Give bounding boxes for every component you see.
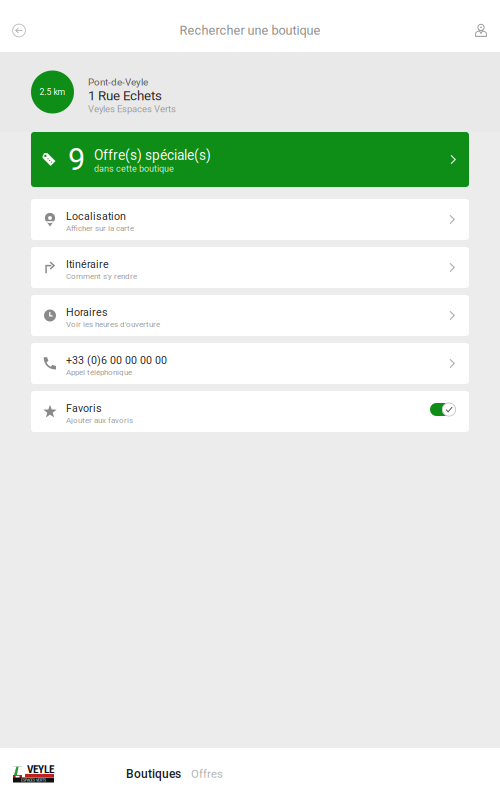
staticText: 9: [68, 141, 85, 177]
button[interactable]: 9: [31, 132, 469, 187]
staticText: ESPACES VERTS: [21, 778, 46, 782]
staticText: Ajouter aux favoris: [66, 416, 133, 425]
staticText: Comment s'y rendre: [66, 272, 137, 281]
staticText: Rechercher une boutique: [179, 23, 320, 38]
staticText: Afficher sur la carte: [66, 224, 134, 233]
staticText: +33 (0)6 00 00 00 00: [66, 354, 167, 367]
button[interactable]: Compte: [462, 8, 500, 52]
button[interactable]: +33 (0)6 00 00 00 00: [31, 343, 469, 384]
staticText: Offres: [191, 767, 223, 781]
staticText: VEYLE: [27, 763, 54, 776]
staticText: dans cette boutique: [94, 163, 174, 174]
staticText: Offre(s) spéciale(s): [94, 147, 211, 163]
staticText: Horaires: [66, 306, 108, 319]
button[interactable]: Offres: [186, 758, 228, 790]
staticText: Itinéraire: [66, 258, 109, 271]
staticText: 1 Rue Echets: [88, 88, 162, 103]
staticText: Voir les heures d'ouverture: [66, 320, 160, 329]
button[interactable]: Localisation: [31, 199, 469, 240]
staticText: Localisation: [66, 210, 126, 223]
button[interactable]: Favoris: [31, 391, 469, 432]
staticText: Appel téléphonique: [66, 368, 132, 377]
button[interactable]: Boutiques: [121, 758, 186, 790]
staticText: 2.5 km: [39, 87, 65, 97]
staticText: Pont-de-Veyle: [88, 76, 148, 88]
staticText: Favoris: [66, 402, 102, 415]
button[interactable]: Horaires: [31, 295, 469, 336]
staticText: Boutiques: [126, 767, 181, 781]
button[interactable]: Retour: [0, 8, 38, 52]
staticText: Veyles Espaces Verts: [88, 103, 176, 115]
button[interactable]: Itinéraire: [31, 247, 469, 288]
